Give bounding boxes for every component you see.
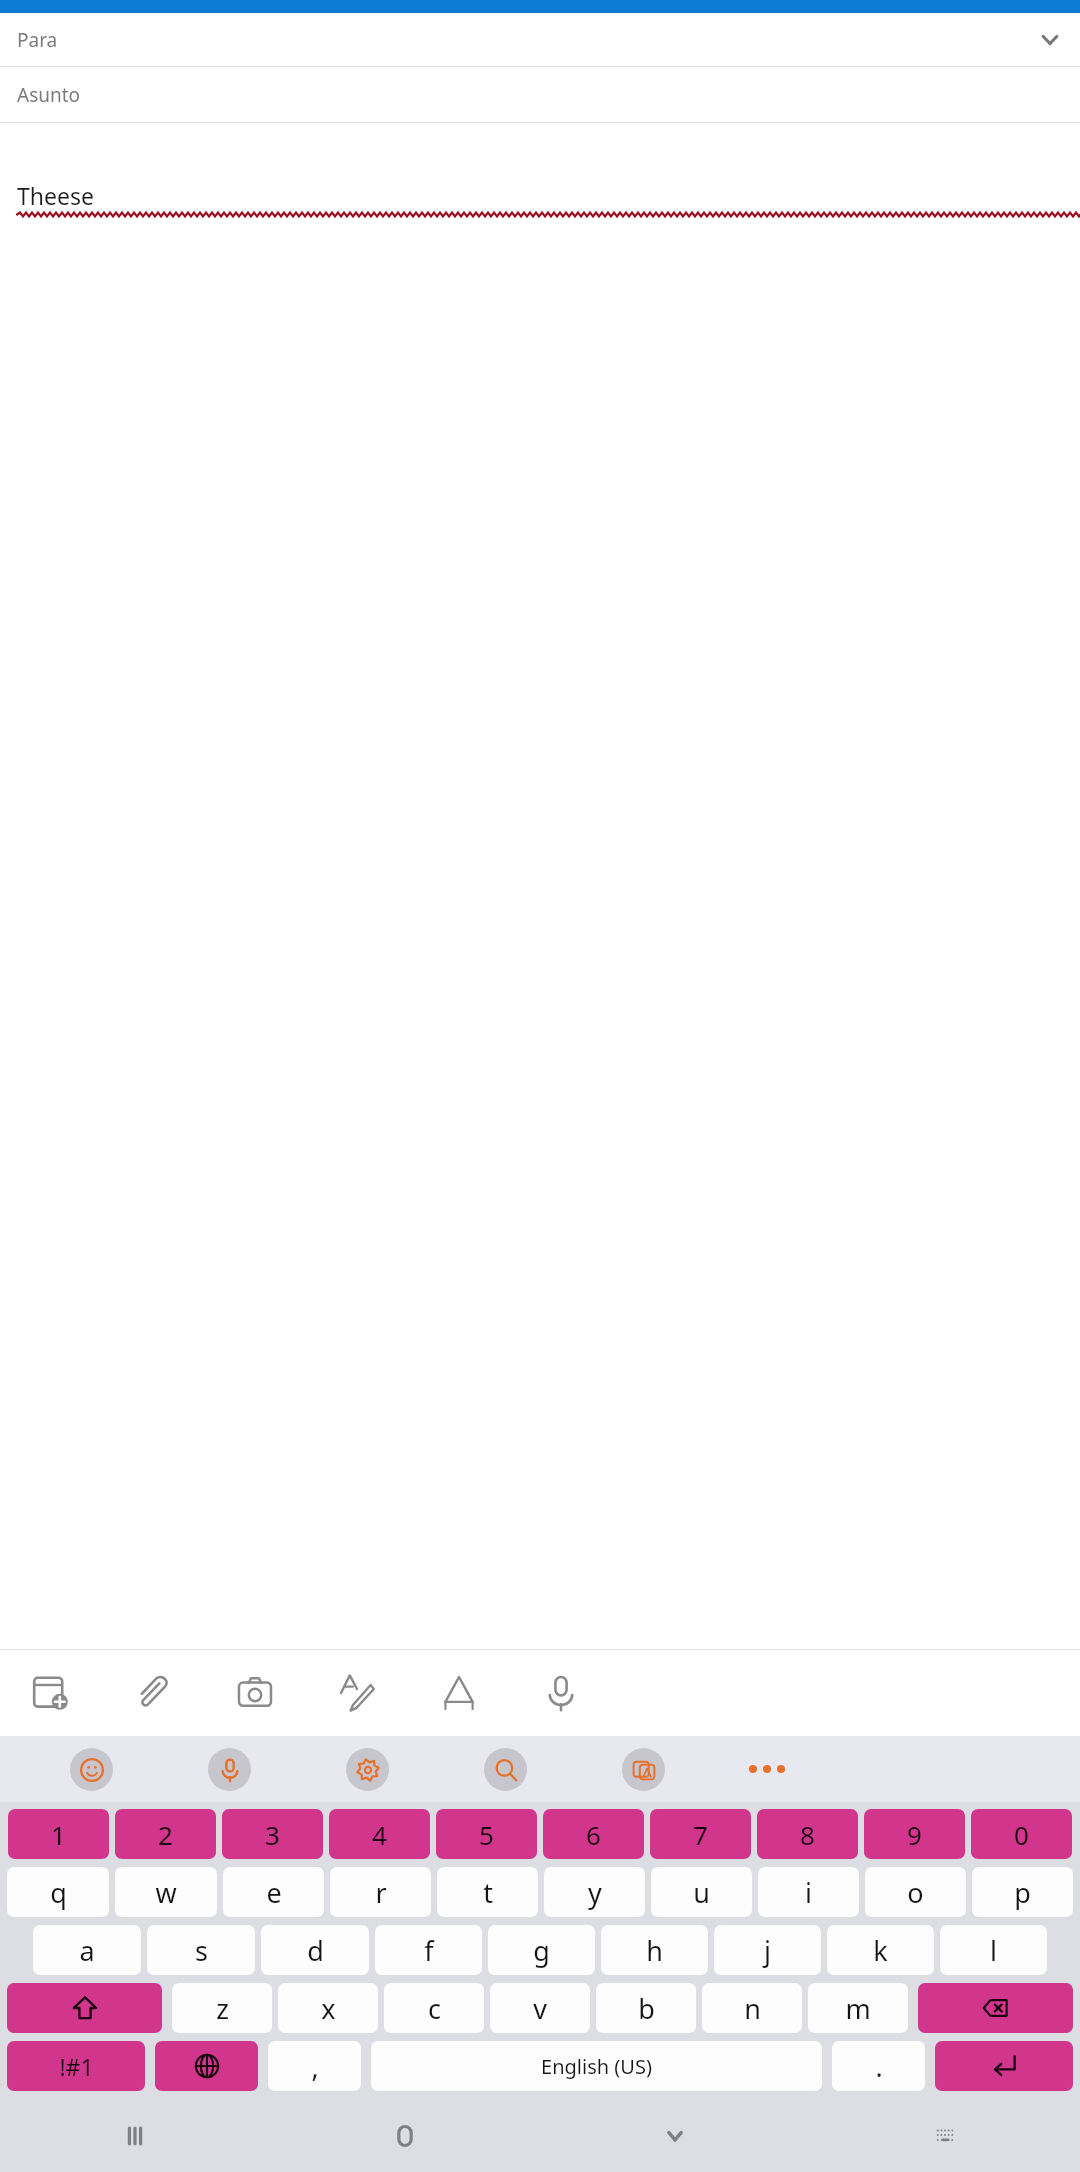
button[interactable]: x: [278, 1983, 378, 2033]
button[interactable]: a: [33, 1925, 141, 1975]
staticText: .: [875, 2048, 883, 2085]
button[interactable]: Shift: [7, 1983, 162, 2033]
staticText: u: [693, 1874, 710, 1911]
button[interactable]: Theese: [0, 123, 1080, 1649]
staticText: a: [79, 1932, 95, 1969]
button[interactable]: r: [330, 1867, 431, 1917]
button[interactable]: Insert card: [0, 1650, 102, 1736]
button[interactable]: Hide keyboard: [540, 2100, 810, 2172]
staticText: g: [533, 1932, 550, 1969]
staticText: p: [1014, 1874, 1031, 1911]
staticText: h: [646, 1932, 663, 1969]
staticText: q: [50, 1874, 67, 1911]
button[interactable]: 9: [864, 1809, 965, 1859]
button[interactable]: 8: [757, 1809, 858, 1859]
button[interactable]: Voice input: [510, 1650, 612, 1736]
other: Expand recipients: [1037, 27, 1063, 53]
staticText: Asunto: [17, 82, 81, 108]
staticText: ,: [311, 2048, 319, 2085]
button[interactable]: More options: [712, 1736, 822, 1802]
button[interactable]: Search: [436, 1736, 574, 1802]
button[interactable]: Translate: [574, 1736, 712, 1802]
button[interactable]: e: [223, 1867, 324, 1917]
button[interactable]: English (US): [371, 2041, 822, 2091]
button[interactable]: f: [375, 1925, 482, 1975]
staticText: 9: [907, 1817, 922, 1852]
button[interactable]: g: [488, 1925, 595, 1975]
button[interactable]: p: [972, 1867, 1073, 1917]
button[interactable]: Asunto: [0, 67, 1080, 122]
button[interactable]: Keyboard settings: [298, 1736, 436, 1802]
button[interactable]: j: [714, 1925, 821, 1975]
button[interactable]: h: [601, 1925, 708, 1975]
staticText: English (US): [541, 2053, 652, 2080]
staticText: 2: [158, 1817, 173, 1852]
staticText: j: [764, 1932, 771, 1969]
button[interactable]: Switch keyboard: [810, 2100, 1080, 2172]
button[interactable]: Home: [270, 2100, 540, 2172]
button[interactable]: Recent apps: [0, 2100, 270, 2172]
button[interactable]: Para: [0, 13, 1080, 66]
staticText: o: [907, 1874, 924, 1911]
button[interactable]: Change language: [155, 2041, 258, 2091]
button[interactable]: u: [651, 1867, 752, 1917]
button[interactable]: Attach file: [102, 1650, 204, 1736]
button[interactable]: ,: [268, 2041, 361, 2091]
staticText: r: [375, 1874, 387, 1911]
staticText: m: [845, 1990, 871, 2027]
button[interactable]: c: [384, 1983, 484, 2033]
button[interactable]: q: [7, 1867, 109, 1917]
button[interactable]: m: [808, 1983, 908, 2033]
staticText: c: [428, 1990, 441, 2027]
button[interactable]: n: [702, 1983, 802, 2033]
button[interactable]: Enter: [935, 2041, 1073, 2091]
staticText: 5: [479, 1817, 494, 1852]
button[interactable]: 4: [329, 1809, 430, 1859]
staticText: i: [805, 1874, 812, 1911]
button[interactable]: !#1: [7, 2041, 145, 2091]
staticText: n: [744, 1990, 761, 2027]
button[interactable]: i: [758, 1867, 859, 1917]
button[interactable]: Camera: [204, 1650, 306, 1736]
staticText: e: [266, 1874, 282, 1911]
button[interactable]: Voice typing: [160, 1736, 298, 1802]
button[interactable]: v: [490, 1983, 590, 2033]
button[interactable]: 7: [650, 1809, 751, 1859]
staticText: 8: [800, 1817, 815, 1852]
button[interactable]: y: [544, 1867, 645, 1917]
staticText: b: [638, 1990, 655, 2027]
staticText: 1: [51, 1817, 66, 1852]
button[interactable]: 2: [115, 1809, 216, 1859]
staticText: Para: [17, 27, 58, 53]
button[interactable]: 6: [543, 1809, 644, 1859]
button[interactable]: 5: [436, 1809, 537, 1859]
button[interactable]: l: [940, 1925, 1047, 1975]
staticText: k: [873, 1932, 888, 1969]
staticText: !#1: [59, 2051, 94, 2082]
staticText: s: [195, 1932, 208, 1969]
staticText: f: [424, 1932, 434, 1969]
staticText: 6: [586, 1817, 601, 1852]
button[interactable]: o: [865, 1867, 966, 1917]
button[interactable]: b: [596, 1983, 696, 2033]
button[interactable]: Backspace: [918, 1983, 1073, 2033]
button[interactable]: 3: [222, 1809, 323, 1859]
staticText: d: [307, 1932, 324, 1969]
button[interactable]: Font: [408, 1650, 510, 1736]
staticText: v: [533, 1990, 547, 2027]
button[interactable]: s: [147, 1925, 255, 1975]
button[interactable]: Emoji: [22, 1736, 160, 1802]
staticText: 7: [693, 1817, 708, 1852]
button[interactable]: z: [172, 1983, 272, 2033]
button[interactable]: Handwriting: [306, 1650, 408, 1736]
button[interactable]: t: [437, 1867, 538, 1917]
button[interactable]: 0: [971, 1809, 1072, 1859]
button[interactable]: k: [827, 1925, 934, 1975]
button[interactable]: .: [832, 2041, 925, 2091]
staticText: l: [990, 1932, 997, 1969]
button[interactable]: w: [115, 1867, 217, 1917]
staticText: 0: [1014, 1817, 1029, 1852]
button[interactable]: 1: [8, 1809, 109, 1859]
button[interactable]: d: [261, 1925, 369, 1975]
staticText: z: [216, 1990, 229, 2027]
